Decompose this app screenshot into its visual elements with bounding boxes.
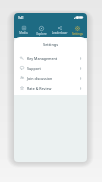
button[interactable]: Settings (69, 26, 86, 36)
button[interactable]: Media (15, 26, 32, 35)
button[interactable]: Rate & Review (14, 83, 87, 93)
button[interactable]: Join discussion (14, 73, 87, 83)
button[interactable]: Key Management (14, 53, 87, 63)
staticText: Settings (43, 42, 59, 47)
staticText: Settings (72, 32, 83, 36)
button[interactable]: Leaderboards (51, 26, 68, 35)
staticText: Rate & Review (27, 86, 52, 91)
staticText: Key Management (27, 56, 58, 61)
staticText: 9:41 (18, 16, 24, 20)
staticText: Explore (36, 32, 47, 36)
button[interactable]: Support (14, 63, 87, 73)
staticText: Media (19, 31, 28, 35)
staticText: Join discussion (27, 76, 53, 81)
staticText: Support (27, 66, 41, 71)
staticText: Leaderboards (51, 31, 68, 35)
button[interactable]: Explore (33, 26, 50, 36)
